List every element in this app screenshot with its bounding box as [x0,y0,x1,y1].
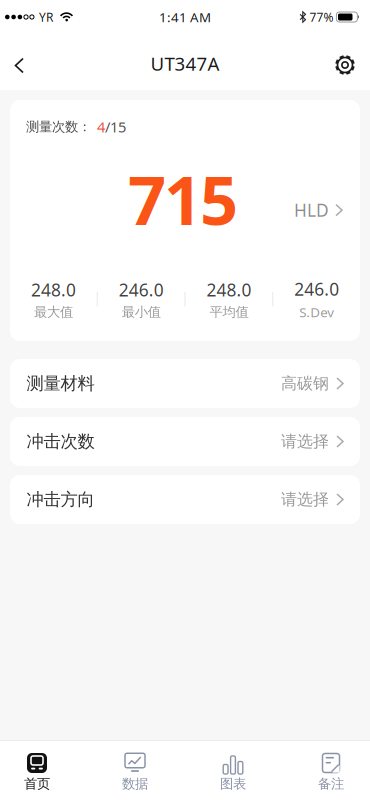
button[interactable]: 首页 [2,752,72,792]
staticText: 1:41 AM [159,8,211,26]
staticText: 248.0 [31,278,76,301]
staticText: /15 [105,117,126,137]
staticText: 图表 [220,775,246,792]
staticText: 最大值 [34,304,73,320]
staticText: 测量次数： [26,119,91,135]
staticText: 77% [309,9,333,25]
staticText: 246.0 [294,278,339,301]
staticText: 测量材料 [26,373,94,394]
staticText: S.Dev [299,303,334,321]
staticText: 最小值 [122,304,161,320]
staticText: UT347A [150,51,219,76]
button[interactable]: 测量材料 [10,359,360,408]
staticText: YR [39,9,53,25]
button[interactable]: 备注 [296,752,366,792]
staticText: 数据 [122,775,148,792]
staticText: 246.0 [119,278,164,301]
staticText: 4 [97,117,105,137]
staticText: 715 [128,155,238,243]
staticText: 平均值 [209,304,248,320]
staticText: 请选择 [281,432,329,451]
staticText: 冲击方向 [26,489,94,510]
staticText: 冲击次数 [26,431,94,452]
button[interactable]: 冲击次数 [10,417,360,466]
button[interactable]: Hardness unit [294,199,343,222]
staticText: 请选择 [281,490,329,509]
button[interactable]: Back [0,40,34,84]
staticText: HLD [294,199,329,222]
button[interactable]: 图表 [198,752,268,792]
button[interactable]: 冲击方向 [10,475,360,524]
staticText: 备注 [318,775,344,792]
button[interactable]: Settings [325,40,370,84]
button[interactable]: 数据 [100,752,170,792]
staticText: 首页 [24,775,50,792]
staticText: 248.0 [206,278,251,301]
staticText: 高碳钢 [281,374,329,393]
